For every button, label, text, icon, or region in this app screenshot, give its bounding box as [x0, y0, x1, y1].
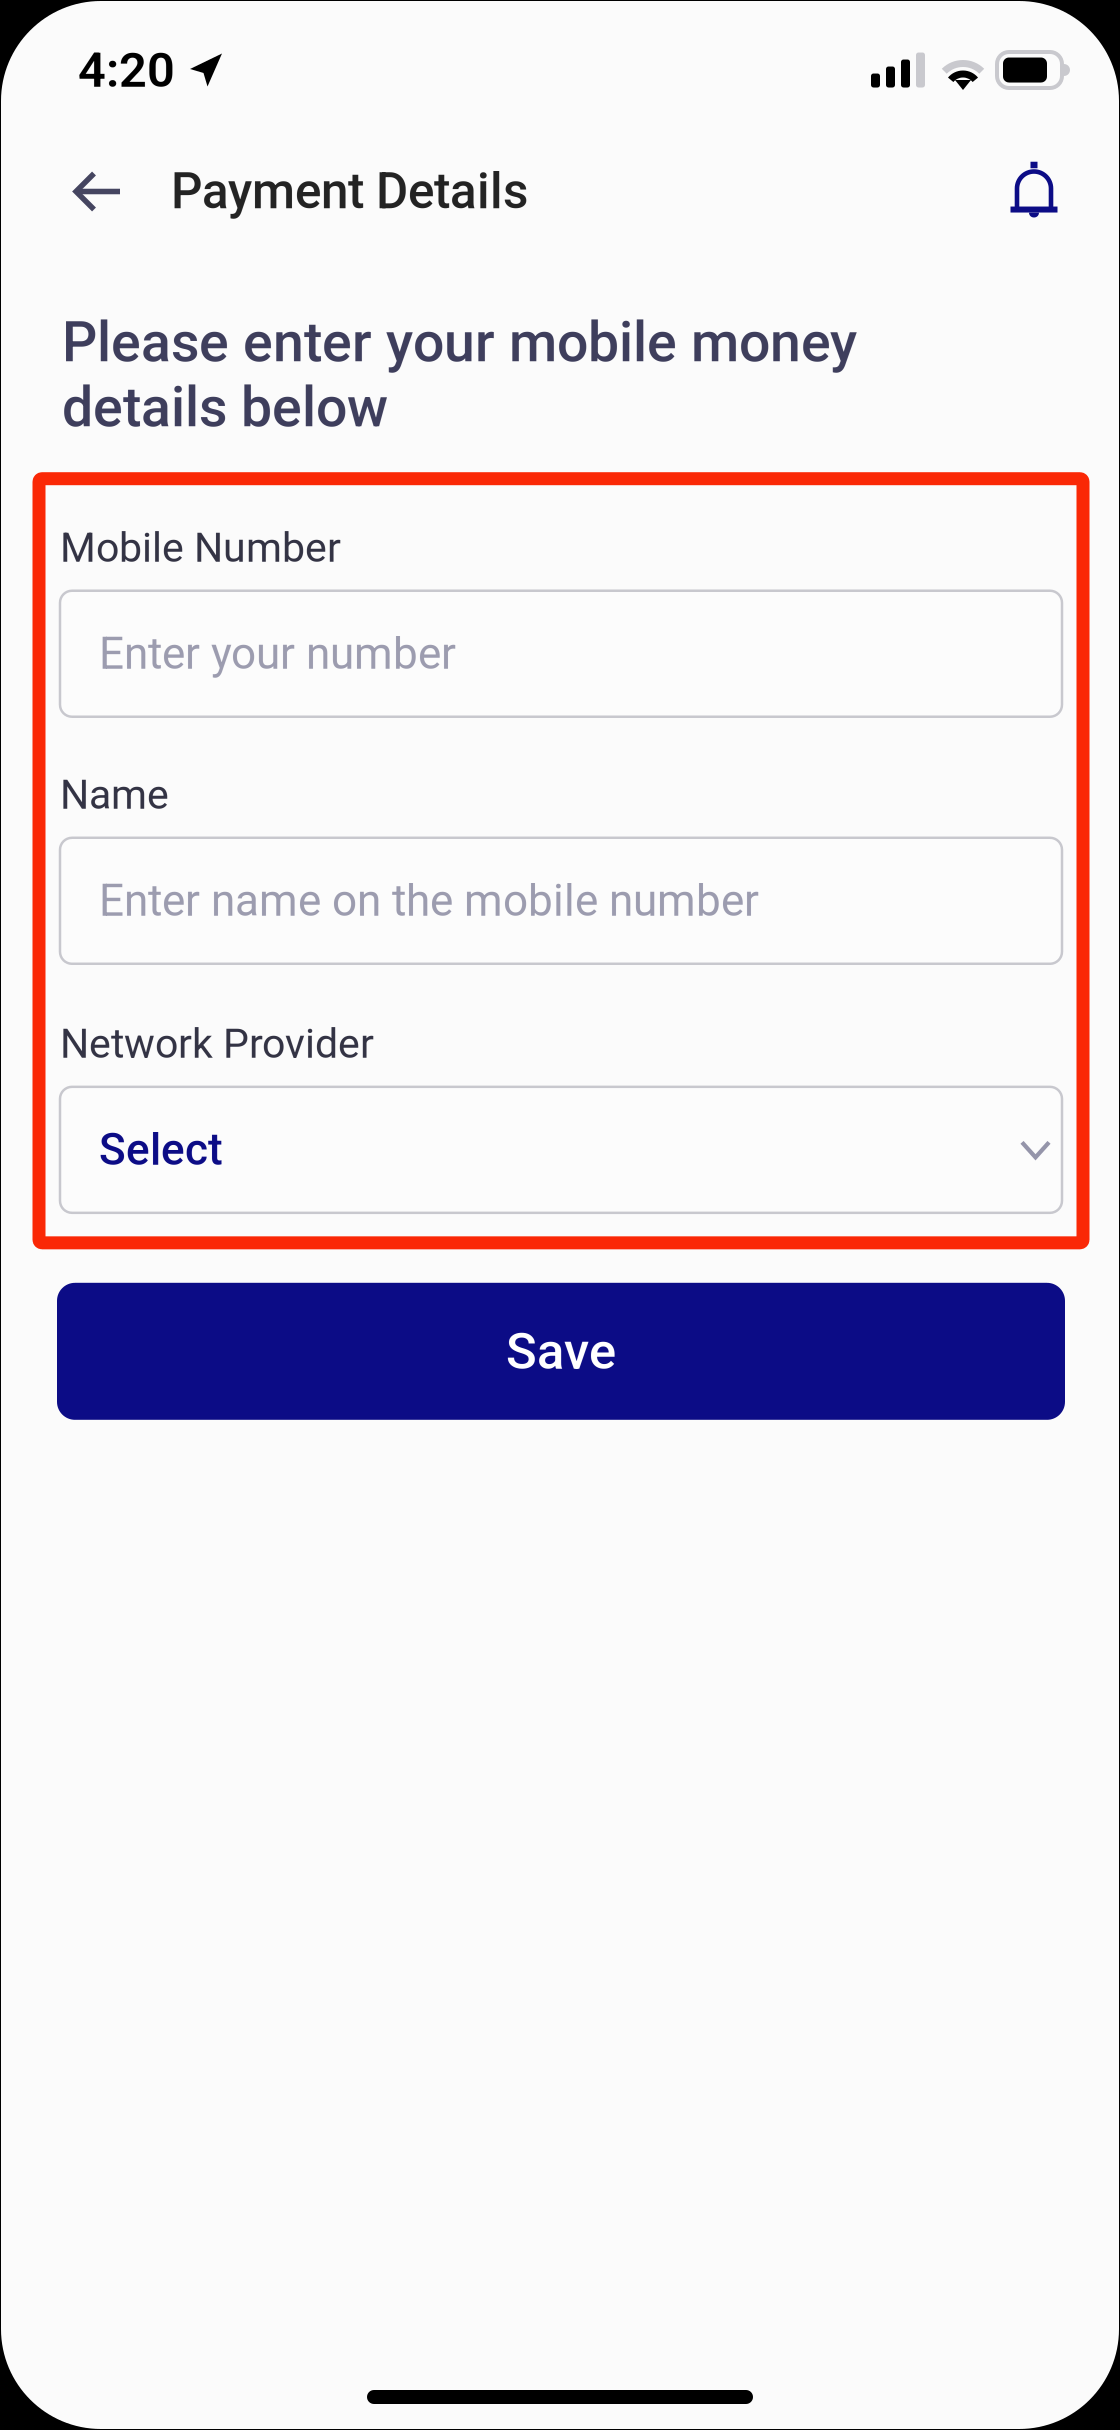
staticText: Select [99, 1124, 223, 1176]
staticText: Enter name on the mobile number [99, 875, 759, 927]
staticText: 4:20 [78, 41, 175, 98]
button[interactable]: Enter name on the mobile number [60, 838, 1062, 964]
staticText: Enter your number [99, 628, 456, 680]
staticText: Please enter your mobile money details b… [62, 310, 857, 440]
button[interactable]: Select [60, 1087, 1062, 1213]
button[interactable]: Save [57, 1283, 1065, 1420]
staticText: Save [506, 1322, 616, 1381]
staticText: Name [60, 771, 169, 819]
button[interactable]: Notifications [997, 154, 1071, 228]
staticText: Payment Details [171, 163, 528, 220]
button[interactable]: Back [61, 154, 135, 228]
staticText: Network Provider [60, 1020, 374, 1068]
staticText: Mobile Number [60, 524, 341, 572]
button[interactable]: Enter your number [60, 591, 1062, 717]
